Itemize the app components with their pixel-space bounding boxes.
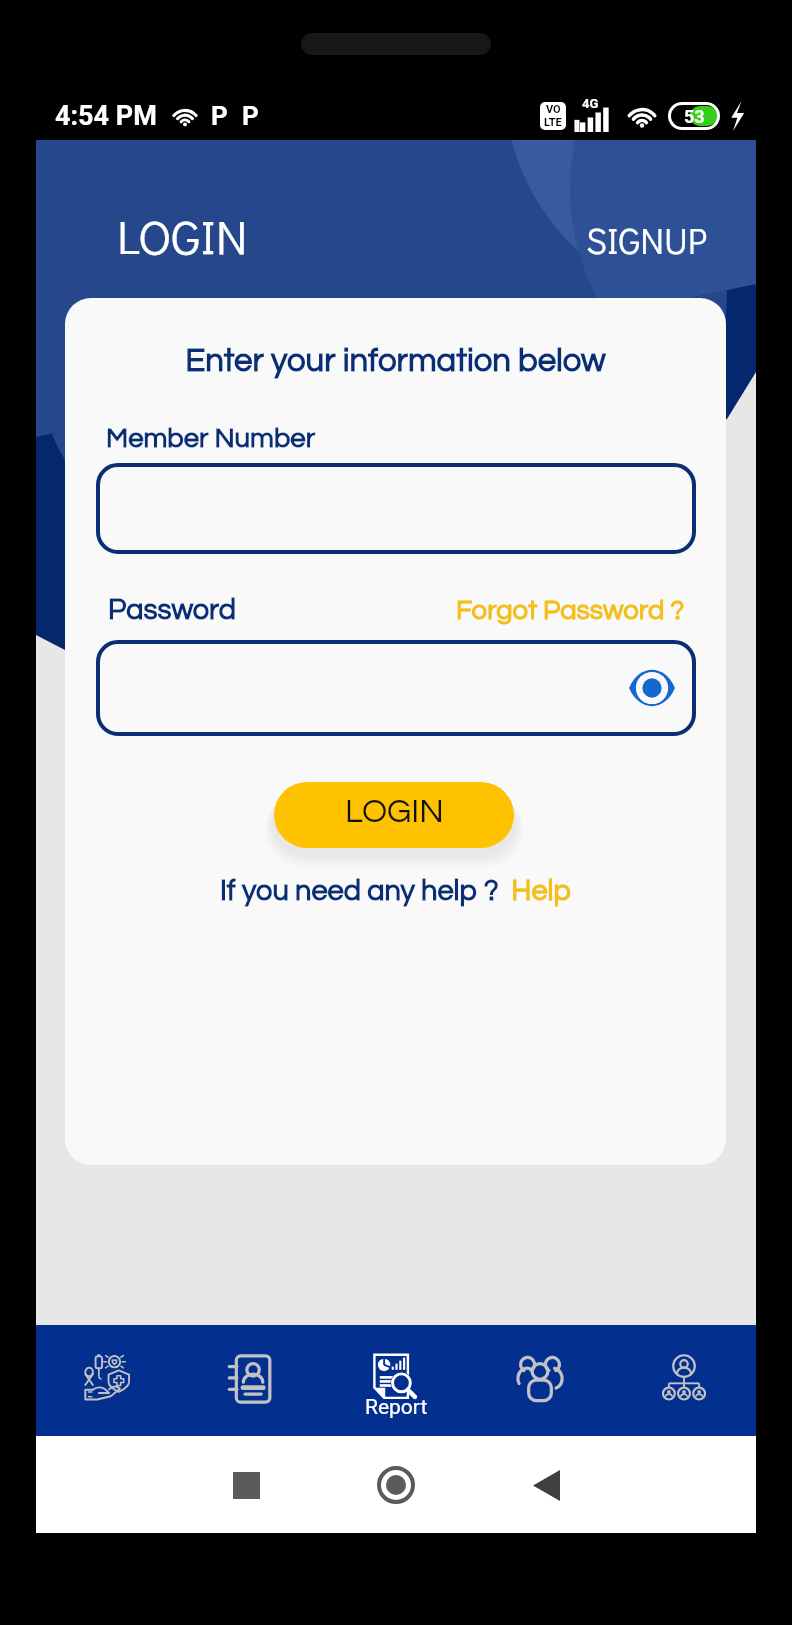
staticText: Enter your information below	[65, 344, 726, 378]
staticText: 4G	[582, 96, 599, 111]
button[interactable]: Home	[360, 1449, 432, 1521]
staticText: Password	[108, 595, 237, 625]
button[interactable]: SIGNUP	[586, 216, 708, 263]
staticText: LTE	[544, 116, 562, 129]
button[interactable]: Members	[468, 1325, 612, 1436]
staticText: VO	[546, 103, 561, 116]
button[interactable]: Network	[612, 1325, 756, 1436]
staticText: Report	[365, 1395, 428, 1420]
staticText: LOGIN	[345, 795, 444, 830]
button[interactable]: Forgot Password ?	[456, 596, 685, 624]
button[interactable]: Back	[510, 1449, 582, 1521]
button[interactable]: Report	[324, 1325, 468, 1436]
staticText: 4:54 PM	[55, 100, 157, 132]
button[interactable]: Benefits	[36, 1325, 180, 1436]
staticText: 53	[684, 106, 705, 127]
button[interactable]: LOGIN	[117, 204, 248, 267]
button[interactable]: Recents	[210, 1449, 282, 1521]
button[interactable]: Directory	[180, 1325, 324, 1436]
button[interactable]: Show password	[629, 665, 675, 711]
staticText: P	[211, 101, 228, 131]
staticText: Member Number	[106, 424, 316, 452]
button[interactable]: LOGIN	[274, 782, 514, 848]
button[interactable]: Help	[505, 876, 571, 906]
staticText: If you need any help ?	[220, 876, 505, 906]
staticText: P	[242, 101, 259, 131]
button[interactable]	[96, 463, 696, 554]
